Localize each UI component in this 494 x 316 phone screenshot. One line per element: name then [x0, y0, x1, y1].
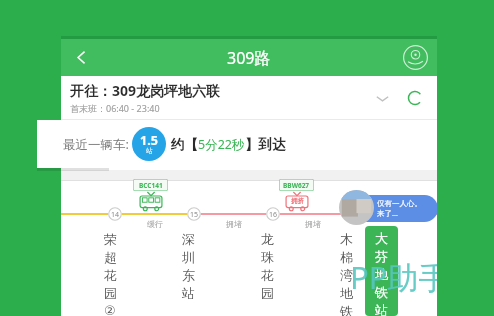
staticText: BCC141	[139, 181, 163, 190]
button[interactable]: 大	[365, 226, 398, 316]
staticText: 站	[182, 285, 195, 301]
staticText: 拥堵	[217, 219, 251, 229]
staticText: 木	[340, 231, 353, 247]
staticText: 309路	[227, 47, 271, 69]
staticText: 拥堵	[296, 219, 330, 229]
staticText: 缓行	[138, 219, 172, 229]
staticText: 棉	[340, 249, 353, 265]
button[interactable]: Expand	[369, 85, 395, 111]
staticText: 】到达	[245, 136, 286, 153]
staticText: 来了…	[377, 208, 398, 218]
staticText: 拥挤	[291, 197, 304, 205]
staticText: 站	[146, 147, 153, 155]
staticText: 14	[111, 210, 120, 220]
staticText: 约【	[171, 136, 198, 153]
staticText: 5分22秒	[198, 136, 245, 153]
staticText: PP助手	[350, 256, 450, 298]
staticText: BBW627	[283, 181, 310, 190]
staticText: 地	[340, 285, 353, 301]
staticText: 超	[104, 249, 117, 265]
staticText: 地	[375, 266, 388, 282]
staticText: 东	[182, 267, 195, 283]
staticText: 深	[182, 231, 195, 247]
staticText: 圳	[182, 249, 195, 265]
staticText: 最近一辆车:	[63, 136, 129, 153]
button[interactable]: 开往：309龙岗坪地六联	[61, 76, 437, 119]
staticText: 铁	[375, 284, 388, 300]
staticText: 园	[104, 285, 117, 301]
staticText: 首末班：06:40 - 23:40	[70, 102, 160, 114]
staticText: 花	[104, 267, 117, 283]
button[interactable]: Refresh	[402, 85, 428, 111]
staticText: 1.5	[140, 132, 158, 149]
staticText: 站	[375, 302, 388, 316]
staticText: 16	[269, 210, 278, 220]
staticText: 大	[375, 230, 388, 246]
staticText: 开往：309龙岗坪地六联	[70, 81, 221, 100]
staticText: 花	[261, 267, 274, 283]
staticText: 荣	[104, 231, 117, 247]
staticText: 铁	[340, 303, 353, 316]
staticText: ②	[104, 303, 116, 316]
staticText: 15	[190, 210, 199, 220]
staticText: 园	[261, 285, 274, 301]
button[interactable]: 最近一辆车:	[37, 120, 460, 168]
button[interactable]: 仅有一人心。	[352, 195, 438, 222]
button[interactable]: Map	[401, 43, 430, 72]
staticText: 湾	[340, 267, 353, 283]
staticText: 仅有一人心。	[377, 199, 422, 208]
staticText: 珠	[261, 249, 274, 265]
staticText: 龙	[261, 231, 274, 247]
staticText: 17	[348, 210, 357, 220]
button[interactable]: Back	[61, 39, 101, 76]
staticText: 芬	[375, 248, 388, 264]
